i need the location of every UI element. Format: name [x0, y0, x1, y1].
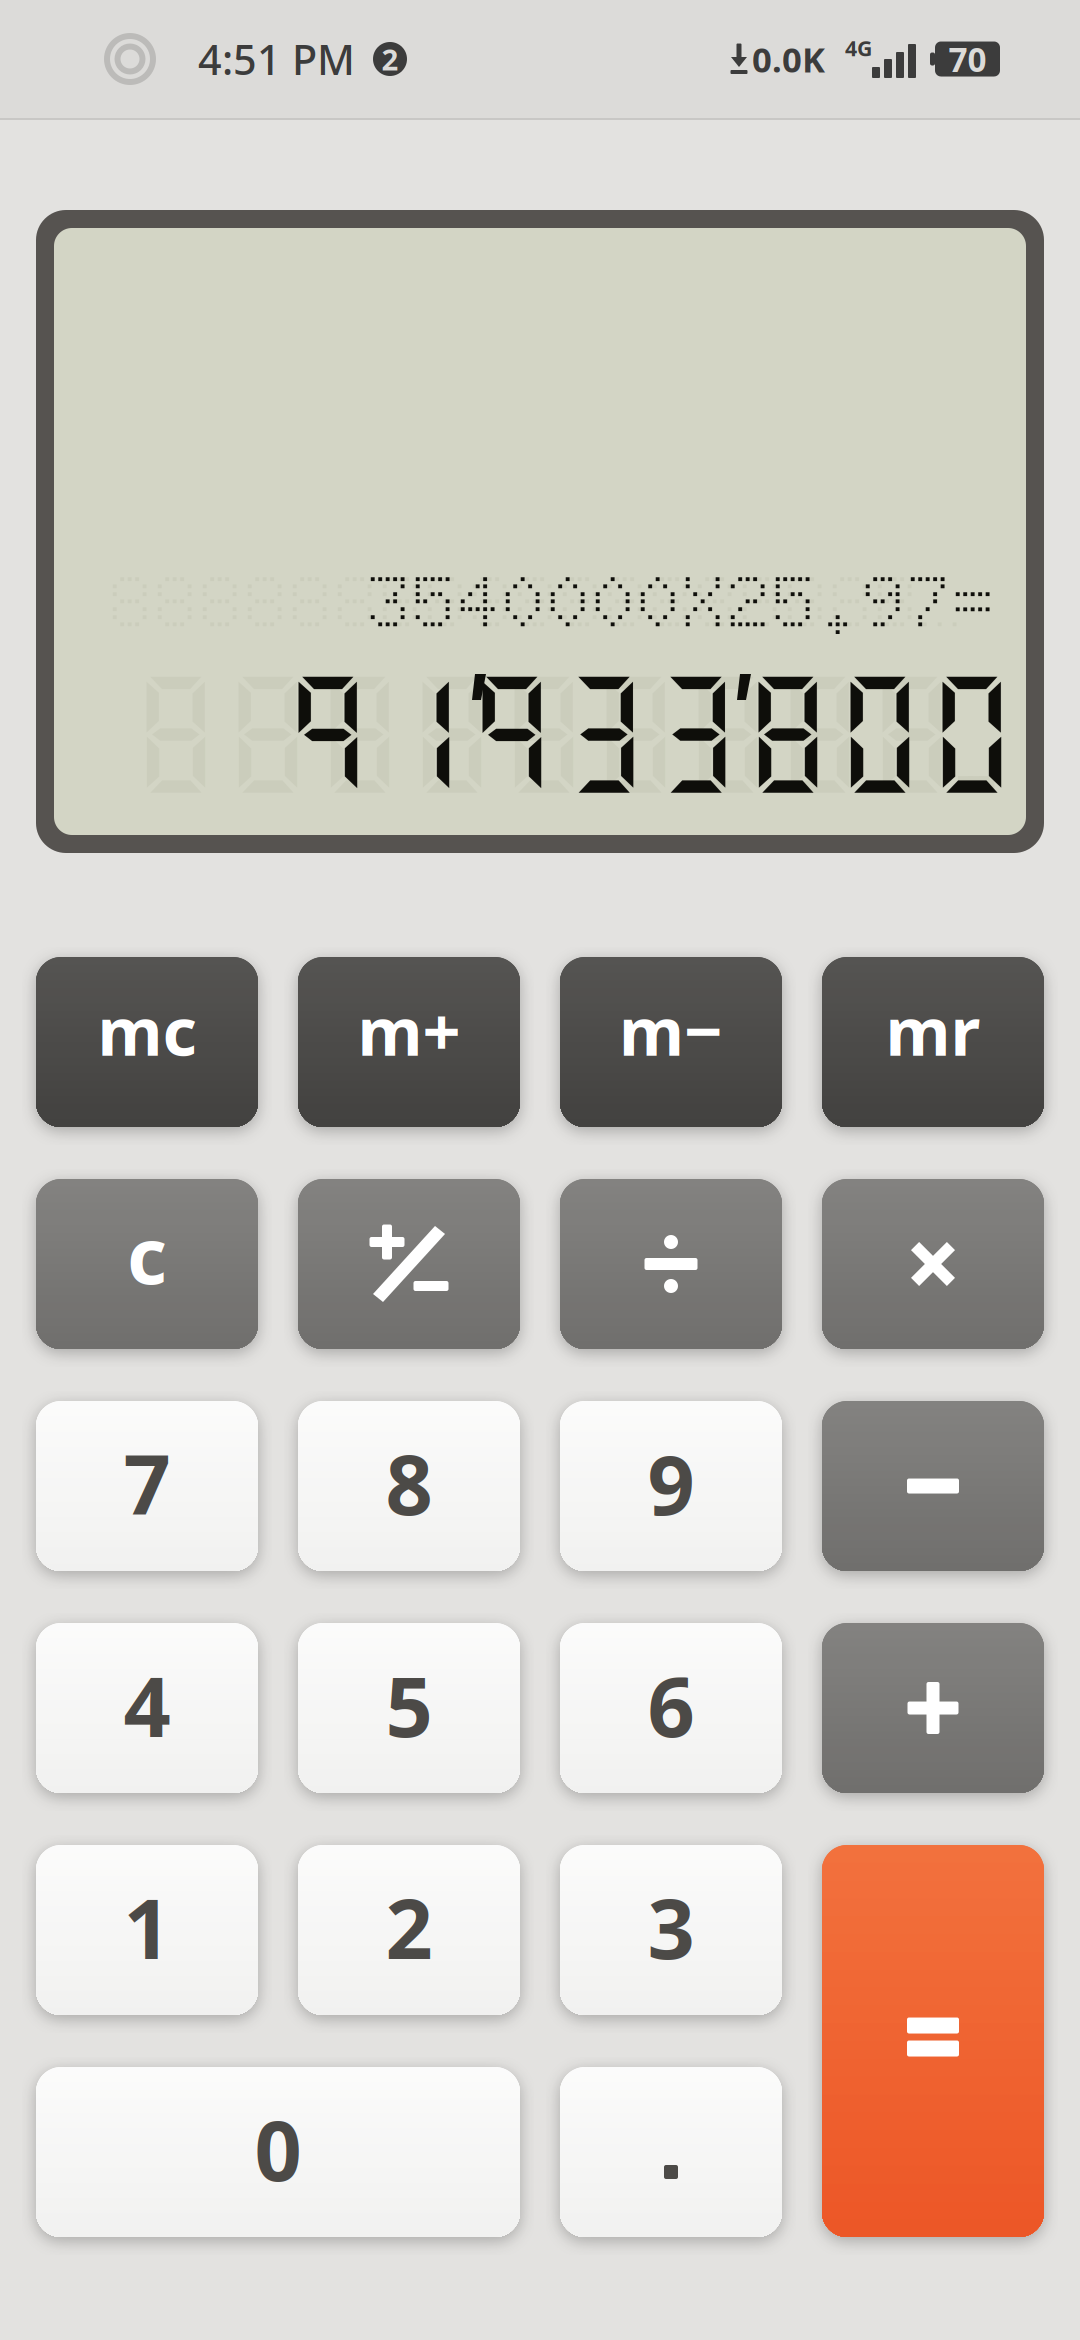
button[interactable]: 9 [560, 1401, 782, 1571]
button[interactable] [822, 1401, 1044, 1571]
staticText: m+ [357, 986, 460, 1074]
staticText: 3 [647, 1872, 694, 1982]
staticText: mr [885, 986, 980, 1074]
button[interactable]: mc [36, 957, 258, 1127]
staticText: 9 [647, 1428, 694, 1538]
button[interactable]: c [36, 1179, 258, 1349]
button[interactable]: m+ [298, 957, 520, 1127]
button[interactable]: 1 [36, 1845, 258, 2015]
staticText: 2 [385, 1872, 432, 1982]
staticText: 0.0K [752, 36, 825, 82]
button[interactable] [560, 2067, 782, 2237]
staticText: 0 [254, 2094, 301, 2204]
staticText: 1 [123, 1872, 170, 1982]
button[interactable] [560, 1179, 782, 1349]
staticText: 91933800 [282, 657, 1018, 805]
staticText: 3540000X25.97= [369, 557, 999, 647]
staticText: 7 [123, 1428, 170, 1538]
staticText: 4 [123, 1650, 170, 1760]
button[interactable] [822, 1623, 1044, 1793]
staticText: c [127, 1203, 167, 1305]
button[interactable]: 4 [36, 1623, 258, 1793]
button[interactable]: 0 [36, 2067, 520, 2237]
staticText: 4:51 PM [198, 32, 355, 86]
staticText: 6 [647, 1650, 694, 1760]
button[interactable] [822, 1845, 1044, 2237]
staticText: 8 [385, 1428, 432, 1538]
button[interactable]: 2 [298, 1845, 520, 2015]
staticText: 4G [845, 34, 872, 62]
button[interactable]: 3 [560, 1845, 782, 2015]
staticText: m− [619, 986, 723, 1074]
button[interactable] [298, 1179, 520, 1349]
staticText: 2 [381, 39, 398, 78]
button[interactable]: 8 [298, 1401, 520, 1571]
button[interactable]: mr [822, 957, 1044, 1127]
button[interactable] [822, 1179, 1044, 1349]
staticText: mc [97, 986, 196, 1074]
staticText: 88888888888888888888 [111, 557, 999, 647]
button[interactable]: 5 [298, 1623, 520, 1793]
staticText: 8888888888 [130, 657, 1018, 805]
button[interactable]: 7 [36, 1401, 258, 1571]
button[interactable]: 6 [560, 1623, 782, 1793]
staticText: 5 [385, 1650, 432, 1760]
button[interactable]: m− [560, 957, 782, 1127]
staticText: 70 [948, 37, 986, 81]
